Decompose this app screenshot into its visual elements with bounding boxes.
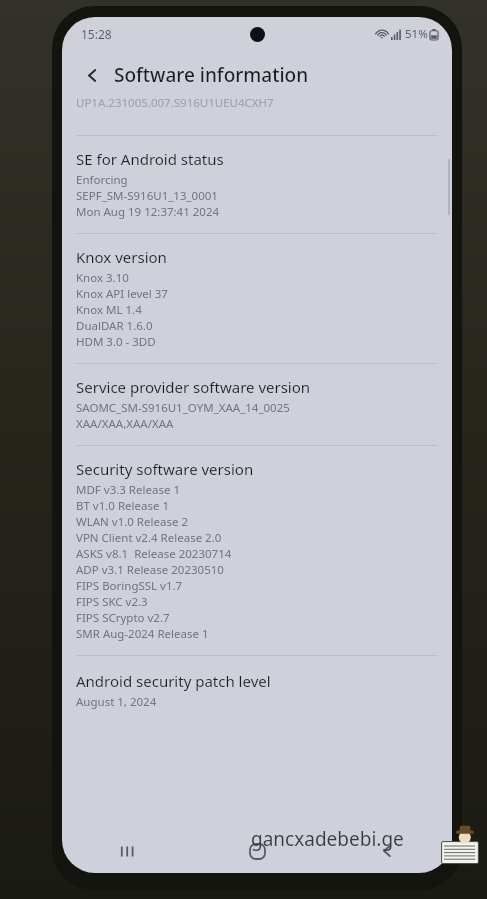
button[interactable]: Recent apps: [62, 829, 192, 873]
staticText: Knox 3.10: [76, 270, 129, 286]
button[interactable]: UP1A.231005.007.S916U1UEU4CXH7: [62, 99, 452, 115]
staticText: ASKS v8.1 Release 20230714: [76, 546, 232, 562]
staticText: gancxadebebi.ge: [251, 826, 404, 852]
staticText: 15:28: [81, 26, 112, 42]
button[interactable]: Home: [192, 829, 322, 873]
staticText: Knox version: [76, 247, 167, 267]
staticText: VPN Client v2.4 Release 2.0: [76, 530, 222, 546]
staticText: FIPS BoringSSL v1.7: [76, 578, 183, 594]
staticText: XAA/XAA,XAA/XAA: [76, 416, 174, 432]
staticText: FIPS SKC v2.3: [76, 594, 148, 610]
button[interactable]: Service provider software version: [62, 364, 452, 445]
staticText: SAOMC_SM-S916U1_OYM_XAA_14_0025: [76, 400, 290, 416]
staticText: Software information: [114, 62, 309, 88]
button[interactable]: SE for Android status: [62, 136, 452, 233]
staticText: WLAN v1.0 Release 2: [76, 514, 188, 530]
button[interactable]: Knox version: [62, 234, 452, 363]
staticText: SEPF_SM-S916U1_13_0001: [76, 188, 218, 204]
staticText: August 1, 2024: [76, 694, 157, 710]
staticText: Enforcing: [76, 172, 128, 188]
staticText: Android security patch level: [76, 671, 271, 691]
staticText: Knox API level 37: [76, 286, 168, 302]
staticText: SMR Aug-2024 Release 1: [76, 626, 209, 642]
button[interactable]: Back: [76, 59, 108, 91]
staticText: SE for Android status: [76, 149, 224, 169]
staticText: Mon Aug 19 12:37:41 2024: [76, 204, 220, 220]
staticText: 51%: [405, 26, 428, 42]
staticText: UP1A.231005.007.S916U1UEU4CXH7: [76, 95, 274, 111]
staticText: Knox ML 1.4: [76, 302, 142, 318]
button[interactable]: Back: [322, 829, 452, 873]
button[interactable]: Security software version: [62, 446, 452, 655]
button[interactable]: Android security patch level: [62, 656, 452, 723]
staticText: Security software version: [76, 459, 254, 479]
staticText: HDM 3.0 - 3DD: [76, 334, 156, 350]
staticText: Service provider software version: [76, 377, 311, 397]
staticText: DualDAR 1.6.0: [76, 318, 153, 334]
staticText: FIPS SCrypto v2.7: [76, 610, 170, 626]
staticText: ADP v3.1 Release 20230510: [76, 562, 224, 578]
staticText: MDF v3.3 Release 1: [76, 482, 180, 498]
staticText: BT v1.0 Release 1: [76, 498, 170, 514]
